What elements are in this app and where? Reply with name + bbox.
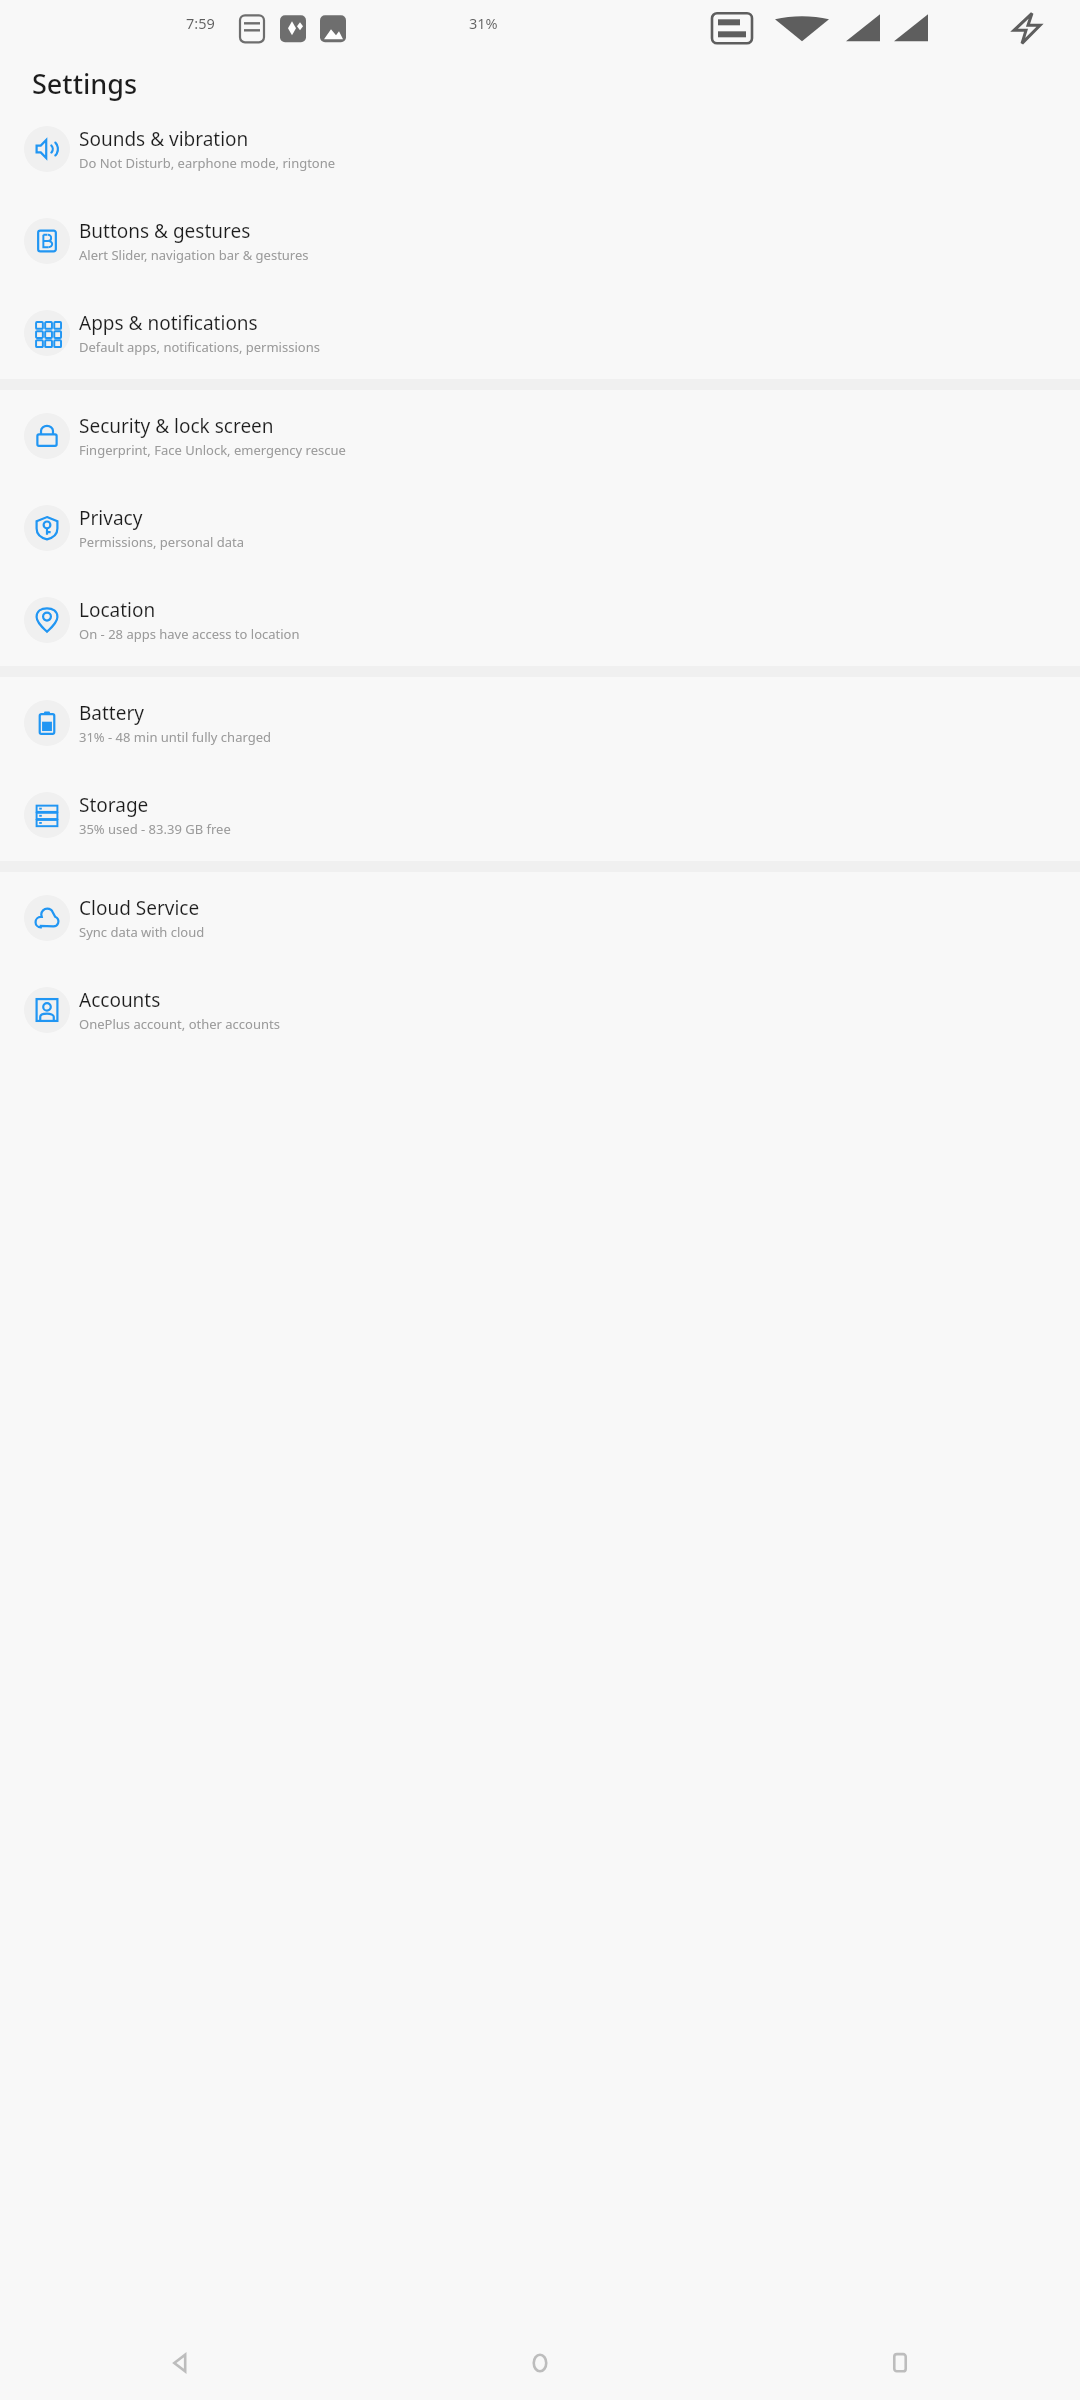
button[interactable]: Back bbox=[0, 2325, 360, 2400]
button[interactable]: Battery bbox=[0, 677, 1080, 769]
staticText: On - 28 apps have access to location bbox=[79, 625, 300, 643]
button[interactable]: Privacy bbox=[0, 482, 1080, 574]
staticText: Sync data with cloud bbox=[79, 923, 205, 941]
staticText: 31% bbox=[469, 13, 498, 33]
staticText: Alert Slider, navigation bar & gestures bbox=[79, 246, 309, 264]
staticText: Sounds & vibration bbox=[79, 126, 249, 152]
staticText: Fingerprint, Face Unlock, emergency resc… bbox=[79, 441, 346, 459]
staticText: Cloud Service bbox=[79, 895, 200, 921]
staticText: Default apps, notifications, permissions bbox=[79, 338, 320, 356]
staticText: 7:59 bbox=[186, 13, 215, 33]
staticText: Apps & notifications bbox=[79, 310, 258, 336]
button[interactable]: Cloud Service bbox=[0, 872, 1080, 964]
button[interactable]: Security & lock screen bbox=[0, 390, 1080, 482]
button[interactable]: Buttons & gestures bbox=[0, 195, 1080, 287]
staticText: Privacy bbox=[79, 505, 143, 531]
staticText: 35% used - 83.39 GB free bbox=[79, 820, 231, 838]
staticText: Permissions, personal data bbox=[79, 533, 244, 551]
button[interactable]: Home bbox=[360, 2325, 720, 2400]
button[interactable]: Sounds & vibration bbox=[0, 103, 1080, 195]
button[interactable]: Storage bbox=[0, 769, 1080, 861]
staticText: Location bbox=[79, 597, 156, 623]
staticText: Accounts bbox=[79, 987, 161, 1013]
staticText: Buttons & gestures bbox=[79, 218, 251, 244]
staticText: 31% - 48 min until fully charged bbox=[79, 728, 271, 746]
staticText: Security & lock screen bbox=[79, 413, 274, 439]
staticText: Storage bbox=[79, 792, 149, 818]
staticText: Settings bbox=[32, 65, 138, 102]
button[interactable]: Apps & notifications bbox=[0, 287, 1080, 379]
button[interactable]: Location bbox=[0, 574, 1080, 666]
staticText: Battery bbox=[79, 700, 144, 726]
staticText: Do Not Disturb, earphone mode, ringtone bbox=[79, 154, 336, 172]
button[interactable]: Recent apps bbox=[720, 2325, 1080, 2400]
staticText: OnePlus account, other accounts bbox=[79, 1015, 280, 1033]
button[interactable]: Accounts bbox=[0, 964, 1080, 1056]
